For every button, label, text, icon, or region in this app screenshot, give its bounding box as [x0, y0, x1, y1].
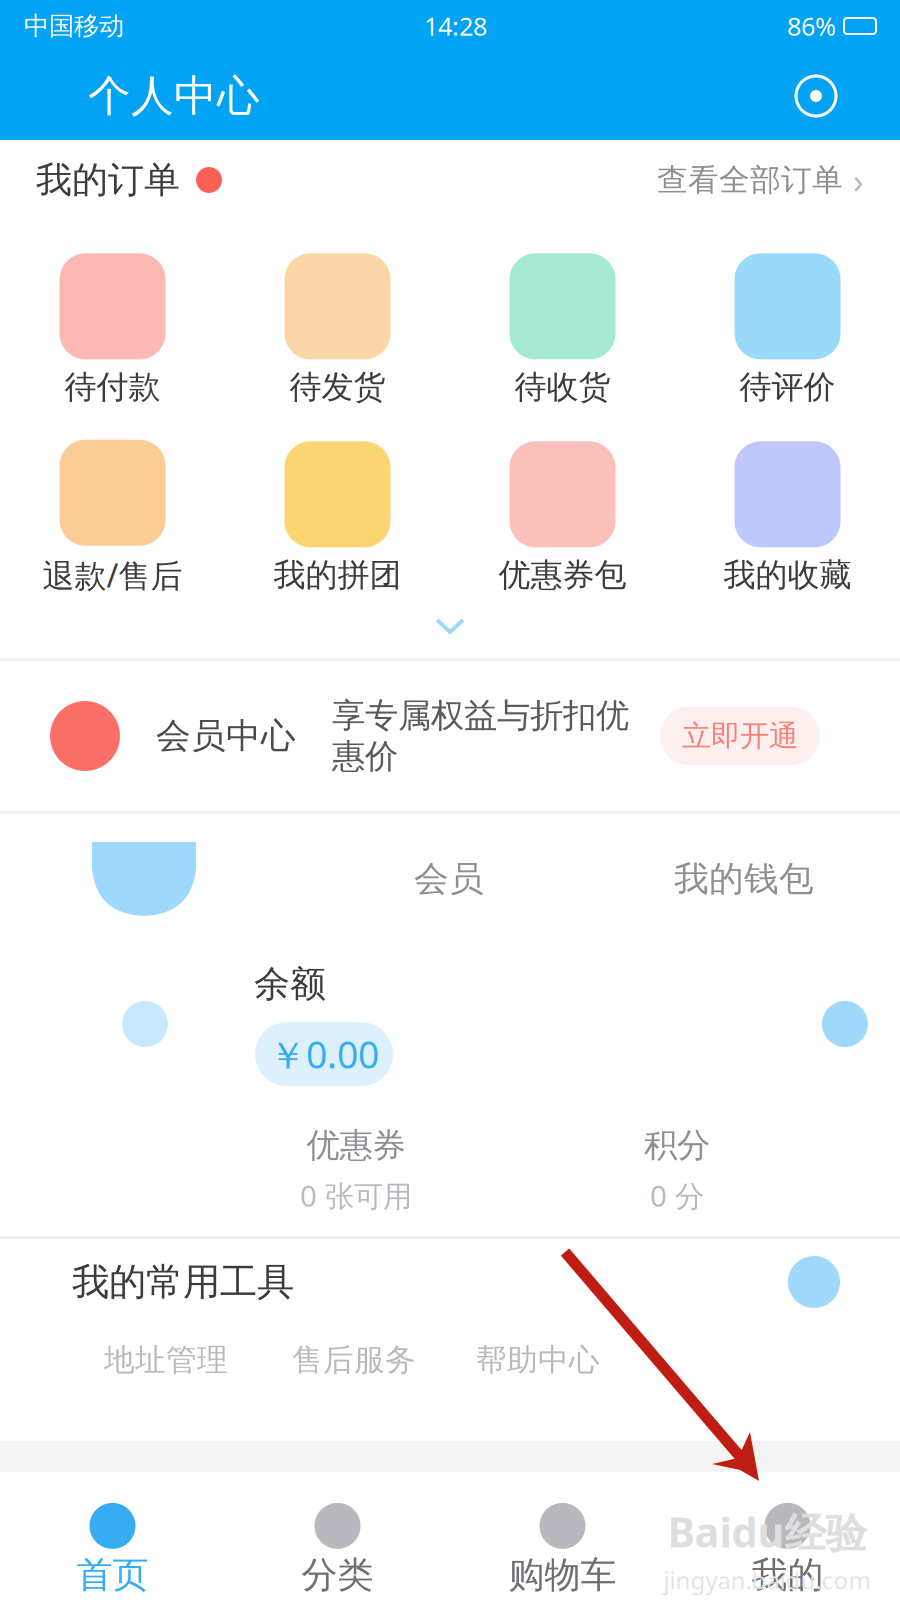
staticText: 14:28	[424, 9, 487, 43]
button[interactable]: 退款/售后	[0, 442, 225, 594]
staticText: 售后服务	[292, 1341, 416, 1379]
staticText: 待收货	[514, 367, 610, 407]
button[interactable]: 我的拼团	[225, 442, 450, 594]
staticText: 退款/售后	[42, 554, 182, 596]
button[interactable]: 待评价	[675, 254, 900, 406]
staticText: 帮助中心	[476, 1341, 600, 1379]
button[interactable]: 待付款	[0, 254, 225, 406]
button[interactable]: 我的订单	[0, 140, 900, 220]
button[interactable]: 购物车	[450, 1472, 675, 1600]
staticText: 86%	[787, 9, 836, 43]
staticText: 立即开通	[682, 718, 798, 754]
button[interactable]: 待发货	[225, 254, 450, 406]
button[interactable]: 优惠券包	[450, 442, 675, 594]
staticText: 0 张可用	[300, 1176, 412, 1215]
staticText: 我的钱包	[674, 858, 814, 900]
staticText: 我的常用工具	[72, 1259, 294, 1305]
staticText: 我的收藏	[723, 555, 851, 595]
staticText: 个人中心	[88, 70, 260, 122]
button[interactable]: Settings	[784, 64, 848, 128]
staticText: 我的	[751, 1553, 823, 1597]
staticText: 享专属权益与折扣优惠价	[332, 695, 629, 777]
button[interactable]: 会员中心	[0, 661, 900, 811]
button[interactable]: Expand	[0, 594, 900, 658]
staticText: jingyan.baidu.com	[663, 1564, 870, 1596]
staticText: ›	[853, 157, 864, 203]
staticText: 优惠券	[306, 1125, 405, 1166]
staticText: 待付款	[64, 367, 160, 407]
staticText: 首页	[76, 1553, 148, 1597]
staticText: 我的订单	[36, 158, 180, 202]
button[interactable]: 我的	[675, 1472, 900, 1600]
button[interactable]: 首页	[0, 1472, 225, 1600]
staticText: 积分	[644, 1125, 710, 1166]
staticText: Baidu经验	[667, 1504, 866, 1559]
button[interactable]: 分类	[225, 1472, 450, 1600]
staticText: 购物车	[508, 1553, 616, 1597]
staticText: 待发货	[289, 367, 385, 407]
staticText: 待评价	[739, 367, 835, 407]
staticText: 中国移动	[24, 10, 124, 41]
button[interactable]: 待收货	[450, 254, 675, 406]
staticText: 查看全部订单	[657, 161, 843, 199]
staticText: 会员中心	[156, 715, 296, 757]
staticText: ￥0.00	[269, 1029, 379, 1079]
staticText: 会员	[414, 858, 484, 900]
staticText: 余额	[254, 962, 326, 1006]
staticText: 我的拼团	[273, 555, 401, 595]
button[interactable]: 我的收藏	[675, 442, 900, 594]
staticText: 分类	[301, 1553, 373, 1597]
staticText: 地址管理	[104, 1341, 228, 1379]
staticText: 0 分	[650, 1176, 704, 1215]
staticText: 优惠券包	[498, 555, 626, 595]
